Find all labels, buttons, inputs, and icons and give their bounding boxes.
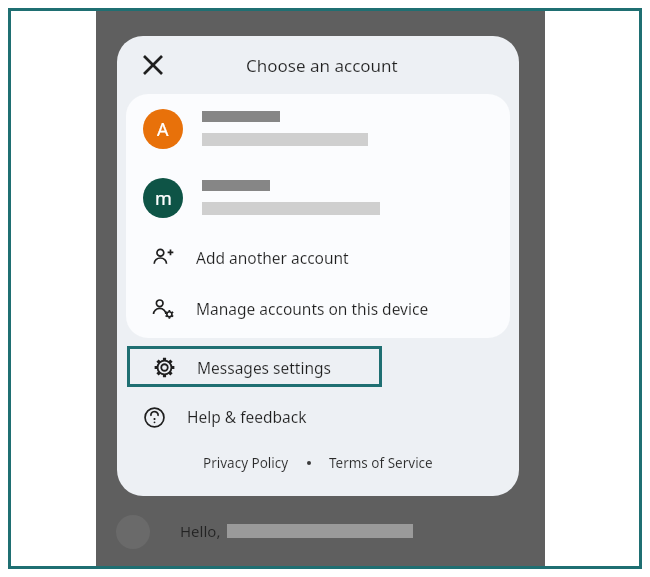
staticText: Help & feedback: [187, 406, 307, 427]
staticText: Privacy Policy: [203, 454, 289, 472]
staticText: A: [157, 117, 169, 142]
button[interactable]: Terms of Service: [327, 452, 435, 474]
button[interactable]: m: [126, 163, 510, 232]
button[interactable]: Messages settings: [127, 346, 382, 387]
staticText: m: [155, 186, 172, 211]
button[interactable]: Add another account: [126, 232, 510, 283]
button[interactable]: Help & feedback: [117, 391, 519, 442]
staticText: Manage accounts on this device: [196, 298, 429, 319]
staticText: Add another account: [196, 247, 349, 268]
button[interactable]: A: [126, 94, 510, 163]
staticText: Terms of Service: [329, 454, 433, 472]
staticText: Choose an account: [246, 54, 398, 77]
staticText: Messages settings: [197, 357, 331, 378]
button[interactable]: Close: [131, 43, 175, 87]
staticText: Hello,: [180, 521, 221, 541]
button[interactable]: Manage accounts on this device: [126, 283, 510, 334]
button[interactable]: Privacy Policy: [201, 452, 291, 474]
